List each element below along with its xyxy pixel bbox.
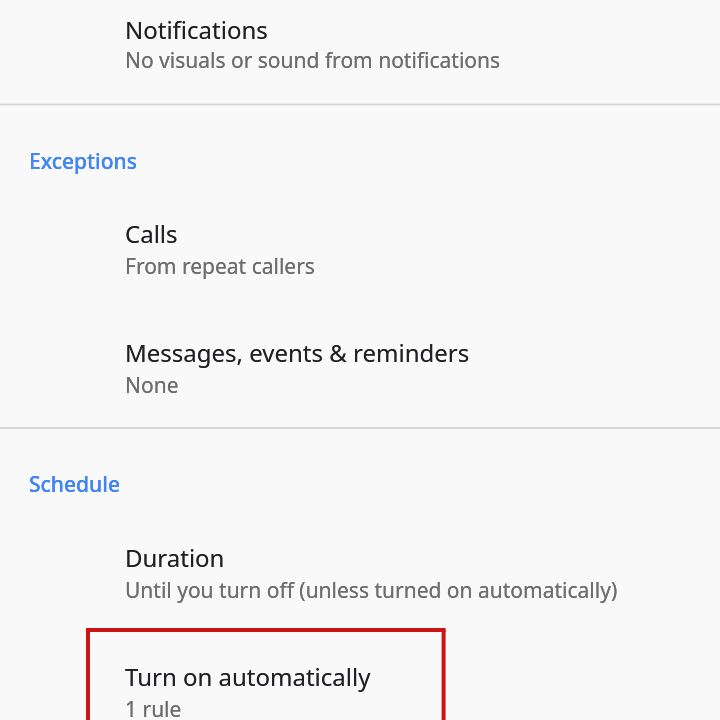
staticText: Turn on automatically (125, 660, 371, 693)
staticText: Messages, events & reminders (125, 336, 470, 369)
button[interactable] (0, 206, 720, 294)
other: Highlighted item (0, 0, 720, 720)
staticText: Turn on automatically (125, 660, 371, 693)
button[interactable] (0, 648, 720, 720)
staticText: Schedule (29, 470, 120, 499)
staticText: Duration (125, 541, 225, 574)
button[interactable] (0, 530, 720, 618)
staticText: Calls (125, 217, 178, 250)
staticText: Notifications (125, 13, 268, 46)
staticText: Schedule (29, 470, 120, 499)
staticText: From repeat callers (125, 252, 315, 281)
staticText: Notifications (125, 13, 268, 46)
staticText: Until you turn off (unless turned on aut… (125, 576, 618, 605)
staticText: None (125, 371, 179, 400)
staticText: Exceptions (29, 147, 137, 176)
staticText: Until you turn off (unless turned on aut… (125, 576, 618, 605)
staticText: No visuals or sound from notifications (125, 46, 501, 75)
staticText: 1 rule (125, 695, 182, 720)
staticText: From repeat callers (125, 252, 315, 281)
button[interactable] (0, 324, 720, 412)
staticText: Duration (125, 541, 225, 574)
staticText: Messages, events & reminders (125, 336, 470, 369)
staticText: 1 rule (125, 695, 182, 720)
staticText: No visuals or sound from notifications (125, 46, 501, 75)
staticText: None (125, 371, 179, 400)
button[interactable] (0, 0, 720, 88)
staticText: Calls (125, 217, 178, 250)
staticText: Exceptions (29, 147, 137, 176)
